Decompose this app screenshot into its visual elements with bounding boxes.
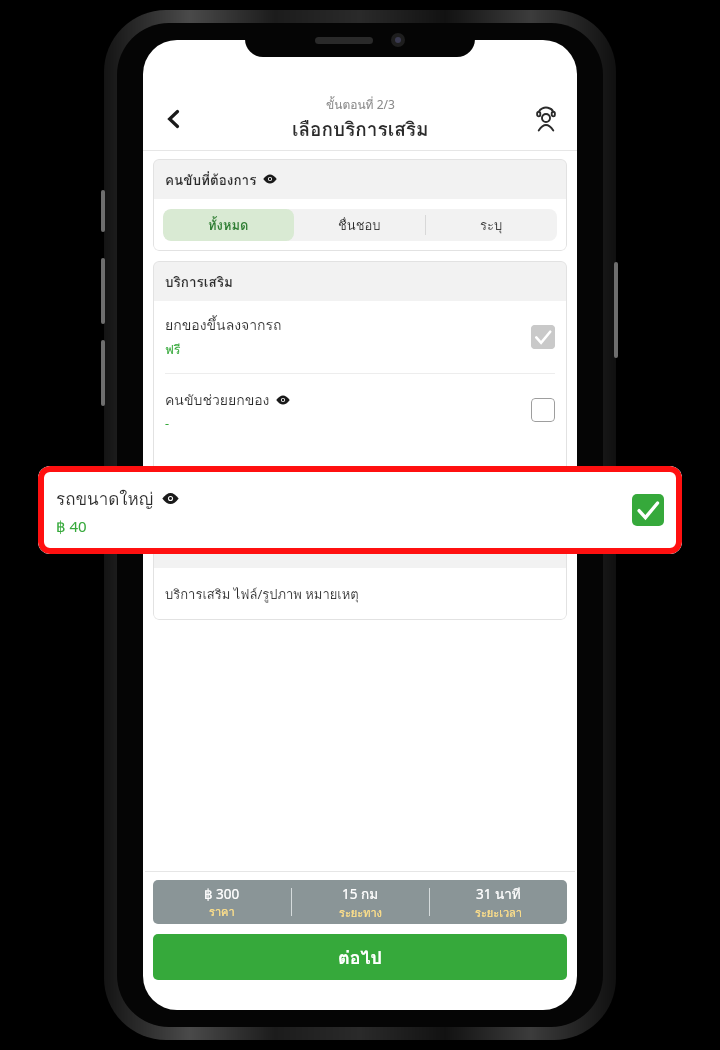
staticText: ชื่นชอบ (338, 215, 381, 236)
staticText: รถขนาดใหญ่ (56, 485, 154, 512)
staticText: ขั้นตอนที่ 2/3 (326, 95, 395, 114)
staticText: ฿ 40 (56, 516, 87, 536)
button[interactable]: ทั้งหมด (163, 209, 294, 241)
staticText: คนขับช่วยยกของ (165, 389, 270, 411)
staticText: คนขับที่ต้องการ (165, 169, 257, 190)
staticText: บริการเสริม ไฟล์/รูปภาพ หมายเหตุ (165, 584, 359, 605)
staticText: - (165, 415, 170, 432)
button[interactable]: ต่อไป (153, 934, 567, 980)
staticText: บริการเสริม (165, 271, 233, 292)
staticText: ระยะเวลา (475, 904, 523, 921)
staticText: 15 กม (342, 883, 379, 904)
staticText: ต่อไป (338, 943, 382, 972)
staticText: ยกของขึ้นลงจากรถ (165, 314, 282, 336)
staticText: ทั้งหมด (208, 215, 249, 236)
button[interactable]: คนขับช่วยยกของ (153, 374, 567, 446)
button[interactable]: Support (529, 102, 563, 136)
button[interactable]: ชื่นชอบ (294, 209, 425, 241)
staticText: ราคา (209, 903, 235, 920)
staticText: เลือกบริการเสริม (292, 114, 429, 144)
button[interactable]: Back (157, 102, 191, 136)
staticText: ระยะทาง (339, 904, 382, 921)
staticText: 31 นาที (476, 883, 521, 904)
staticText: ตัวเลือกเพิ่มเติม (165, 538, 256, 559)
button[interactable]: รถขนาดใหญ่ (38, 466, 682, 554)
staticText: ฿ 300 (204, 885, 240, 903)
staticText: ระบุ (480, 215, 503, 236)
button[interactable]: ระบุ (426, 209, 557, 241)
button[interactable]: ยกของขึ้นลงจากรถ (153, 301, 567, 374)
staticText: ฟรี (165, 340, 181, 360)
